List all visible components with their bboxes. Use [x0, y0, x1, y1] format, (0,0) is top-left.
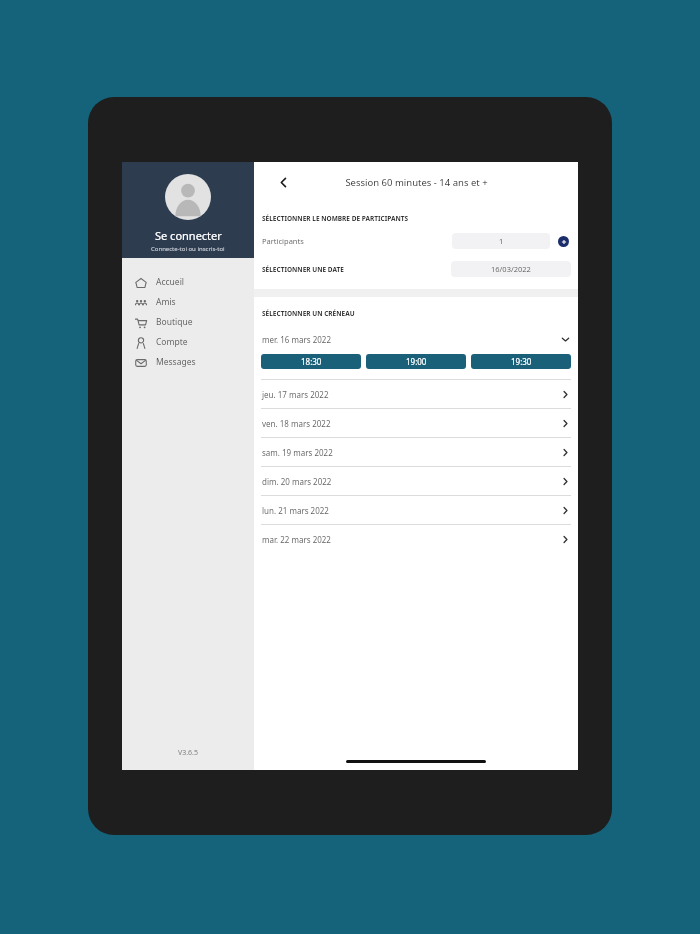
staticText: 1	[499, 236, 504, 246]
staticText: dim. 20 mars 2022	[262, 476, 332, 487]
staticText: Se connecter	[155, 228, 222, 243]
staticText: mer. 16 mars 2022	[262, 334, 331, 345]
button[interactable]: 18:30	[261, 354, 361, 369]
staticText: SÉLECTIONNER UN CRÉNEAU	[262, 309, 355, 318]
button[interactable]: Amis	[122, 292, 254, 312]
staticText: Accueil	[156, 276, 185, 288]
staticText: 19:00	[406, 356, 427, 367]
button[interactable]: 1	[452, 233, 550, 249]
button[interactable]: Accueil	[122, 272, 254, 292]
button[interactable]: ven. 18 mars 2022	[254, 409, 578, 437]
button[interactable]: 16/03/2022	[451, 261, 571, 277]
button[interactable]: dim. 20 mars 2022	[254, 467, 578, 495]
button[interactable]: Compte	[122, 332, 254, 352]
staticText: lun. 21 mars 2022	[262, 505, 329, 516]
staticText: Compte	[156, 336, 188, 348]
button[interactable]: mar. 22 mars 2022	[254, 525, 578, 553]
staticText: Boutique	[156, 316, 193, 328]
button[interactable]: Back	[272, 171, 294, 193]
staticText: 19:30	[511, 356, 532, 367]
staticText: SÉLECTIONNER UNE DATE	[262, 265, 344, 274]
staticText: Messages	[156, 356, 196, 368]
staticText: V3.6.5	[178, 748, 198, 758]
staticText: ven. 18 mars 2022	[262, 418, 331, 429]
button[interactable]: sam. 19 mars 2022	[254, 438, 578, 466]
staticText: SÉLECTIONNER LE NOMBRE DE PARTICIPANTS	[262, 214, 409, 223]
button[interactable]: 19:00	[366, 354, 466, 369]
staticText: Session 60 minutes - 14 ans et +	[345, 176, 488, 189]
button[interactable]: jeu. 17 mars 2022	[254, 380, 578, 408]
button[interactable]: Se connecter	[122, 162, 254, 258]
button[interactable]: mer. 16 mars 2022	[254, 330, 578, 348]
button[interactable]: Boutique	[122, 312, 254, 332]
button[interactable]: lun. 21 mars 2022	[254, 496, 578, 524]
staticText: Participants	[262, 236, 304, 246]
staticText: sam. 19 mars 2022	[262, 447, 333, 458]
staticText: Connecte-toi ou inscris-toi	[151, 245, 225, 253]
button[interactable]: Add participant	[558, 236, 569, 247]
staticText: 16/03/2022	[491, 264, 531, 274]
staticText: mar. 22 mars 2022	[262, 534, 331, 545]
staticText: Amis	[156, 296, 176, 308]
staticText: 18:30	[301, 356, 322, 367]
button[interactable]: 19:30	[471, 354, 571, 369]
button[interactable]: Messages	[122, 352, 254, 372]
staticText: jeu. 17 mars 2022	[262, 389, 329, 400]
